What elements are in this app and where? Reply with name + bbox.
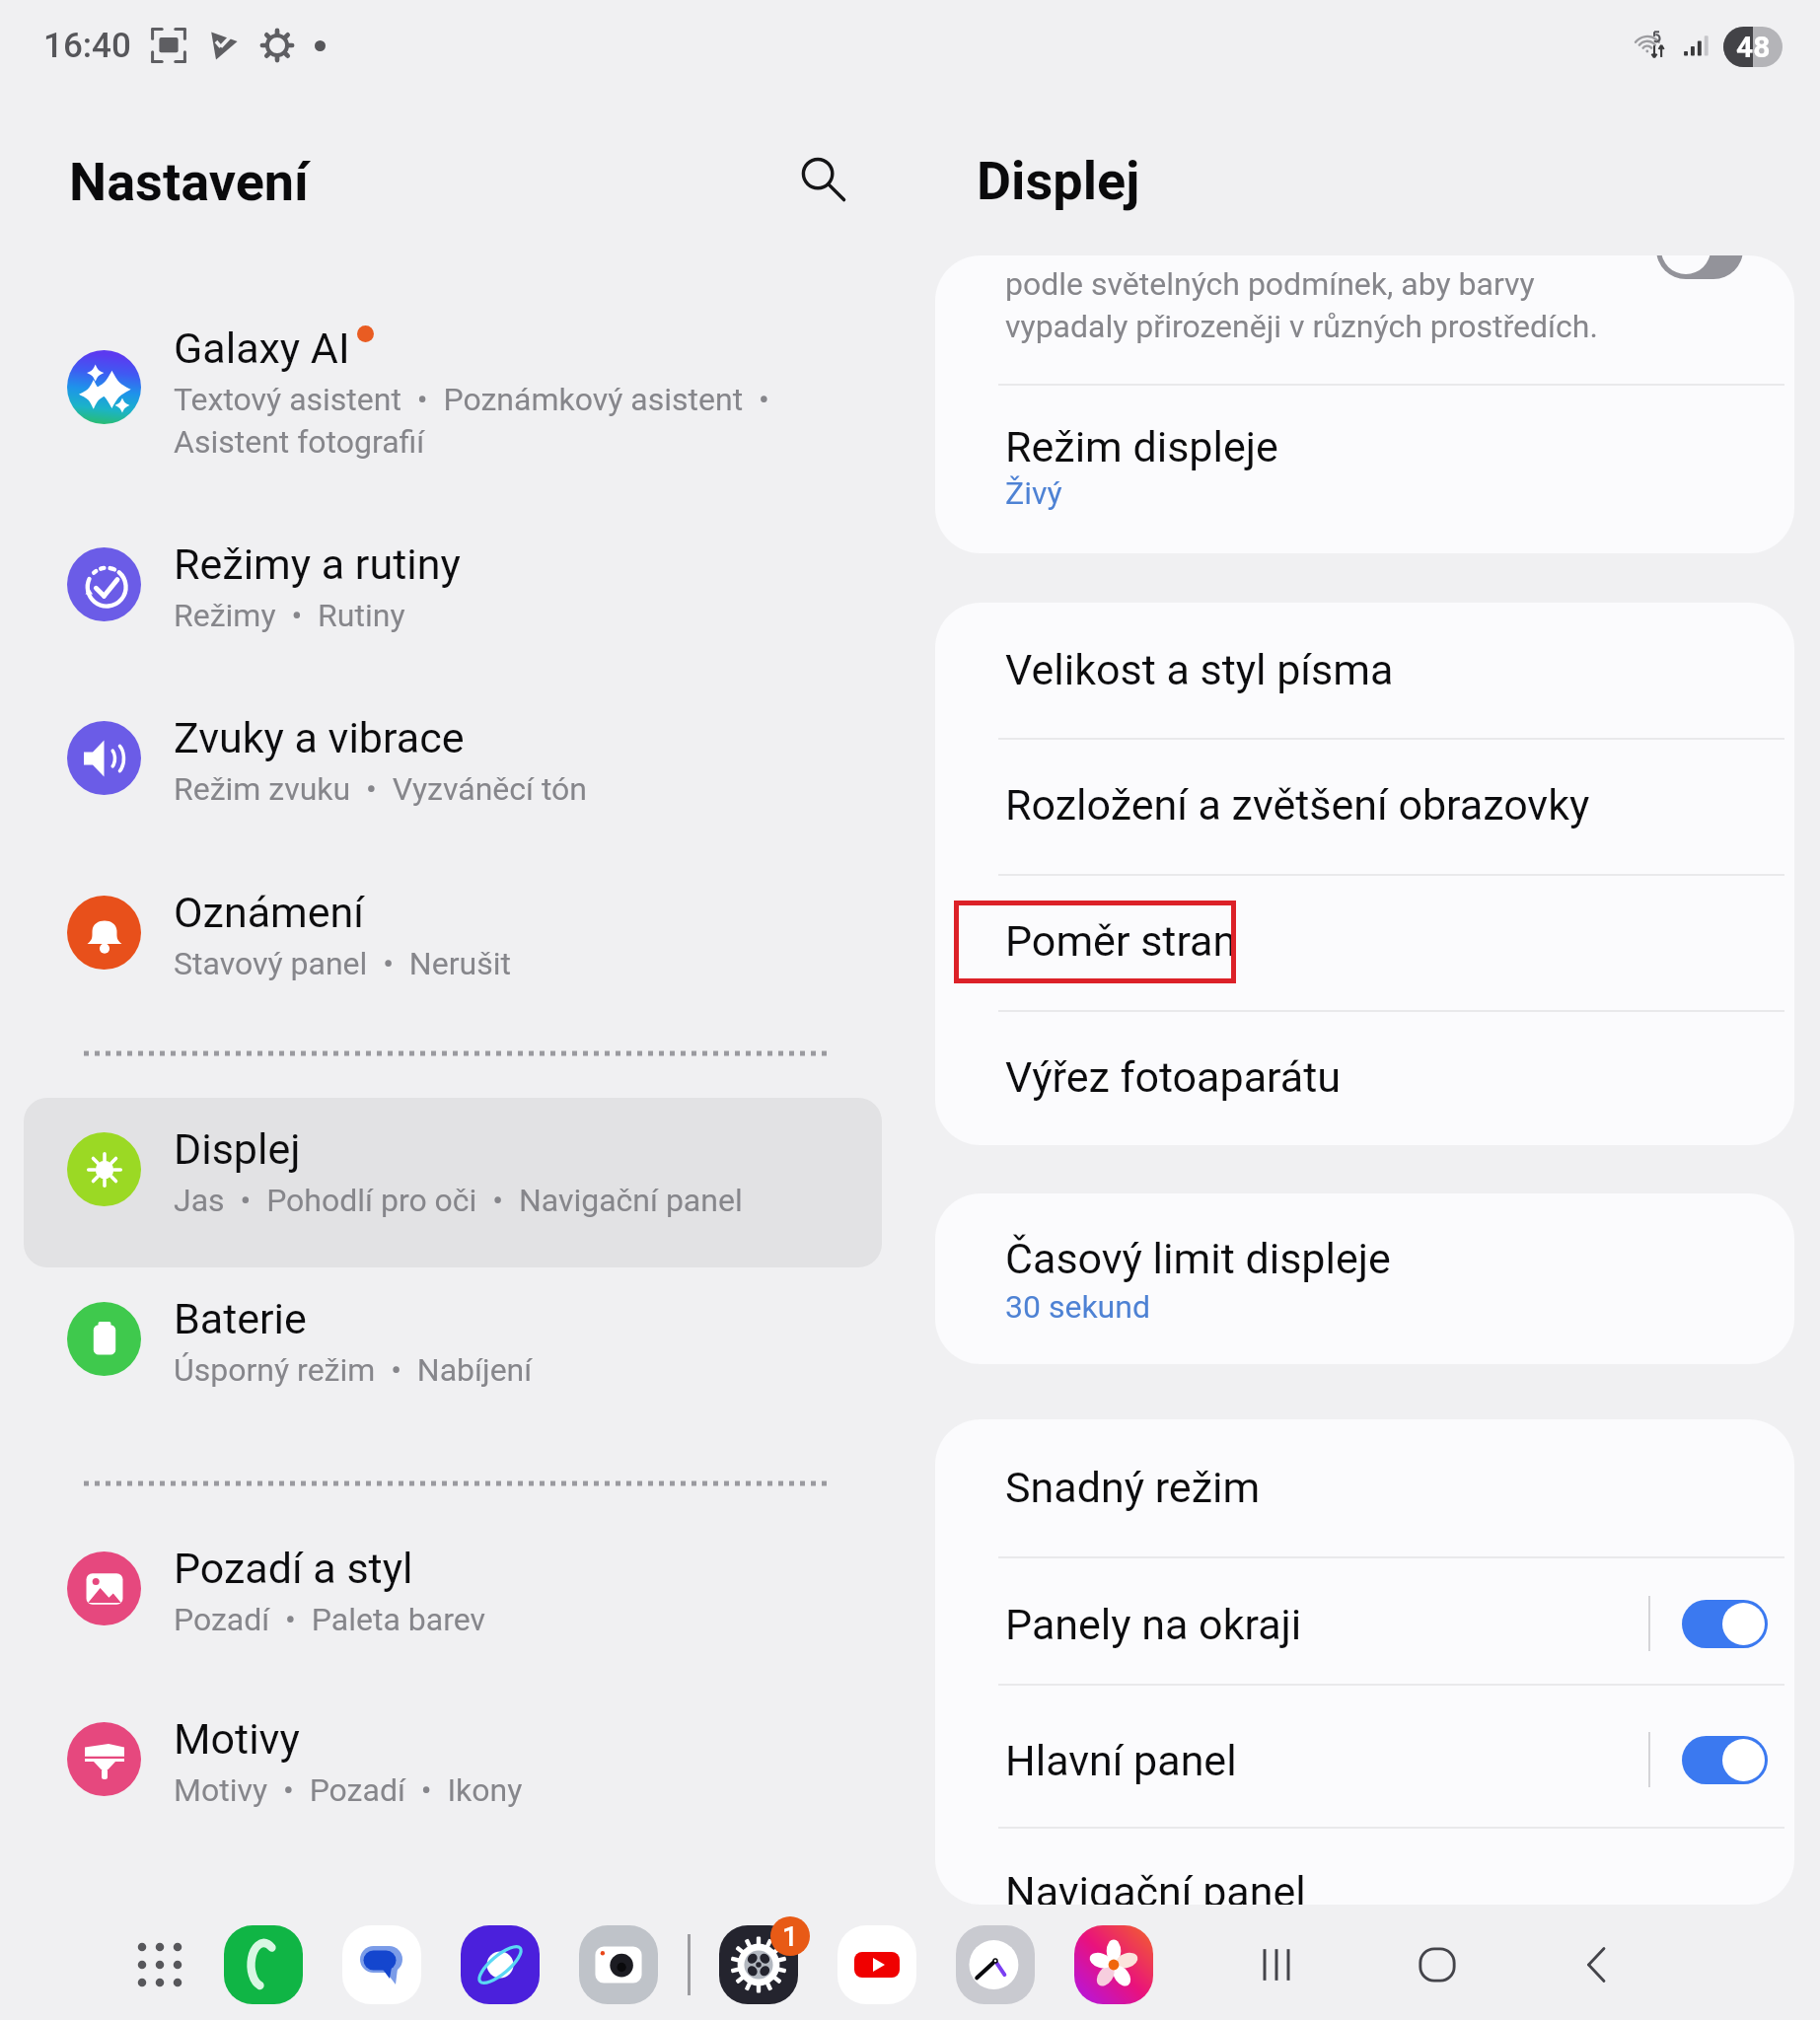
staticText: Stavový panel • Nerušit [174,945,511,982]
staticText: Hlavní panel [1005,1736,1237,1785]
button[interactable]: Messages [341,1924,422,2005]
staticText: 1 [782,1920,798,1953]
staticText: Režim zvuku • Vyzváněcí tón [174,770,587,808]
staticText: 30 sekund [1005,1288,1150,1326]
button[interactable]: Displej [26,1099,882,1247]
staticText: Zvuky a vibrace [174,713,465,762]
staticText: Navigační panel [1005,1867,1306,1905]
button[interactable]: Camera [578,1924,659,2005]
staticText: Motivy [174,1714,300,1764]
staticText: Rozložení a zvětšení obrazovky [1005,780,1590,830]
staticText: Časový limit displeje [1005,1234,1391,1283]
staticText: Režim displeje [1005,422,1278,471]
staticText: 48 [1736,30,1771,64]
button[interactable]: Apps [119,1924,200,2005]
staticText: podle světelných podmínek, aby barvy vyp… [1005,265,1598,345]
button[interactable]: Režimy a rutiny [26,514,882,662]
staticText: Displej [977,150,1140,212]
staticText: 16:40 [43,26,131,66]
staticText: Režimy • Rutiny [174,597,405,634]
staticText: Textový asistent • Poznámkový asistent •… [174,381,769,461]
button[interactable]: Recents [1236,1924,1317,2005]
staticText: Baterie [174,1294,307,1343]
button[interactable]: Oznámení [26,862,882,1010]
button[interactable]: Galaxy AI [26,298,882,491]
button[interactable]: Internet [460,1924,541,2005]
button[interactable]: Toggle [1626,1726,1711,1793]
staticText: Poměr stran [1005,916,1237,966]
button[interactable]: Phone [223,1924,304,2005]
staticText: Snadný režim [1005,1463,1261,1512]
button[interactable]: Clock [955,1924,1036,2005]
button[interactable]: Pozadí a styl [26,1518,882,1666]
button[interactable]: Baterie [26,1268,882,1416]
staticText: Výřez fotoaparátu [1005,1052,1341,1102]
staticText: Velikost a styl písma [1005,645,1394,694]
staticText: Úsporný režim • Nabíjení [174,1351,533,1389]
staticText: Živý [1005,474,1062,512]
staticText: Pozadí • Paleta barev [174,1601,485,1638]
button[interactable]: Back [1558,1924,1638,2005]
staticText: Panely na okraji [1005,1600,1302,1649]
staticText: Oznámení [174,888,364,937]
staticText: Displej [174,1124,301,1174]
button[interactable]: Motivy [26,1689,882,1837]
button[interactable]: Zvuky a vibrace [26,687,882,835]
button[interactable]: Search [777,133,868,224]
button[interactable]: Toggle [1626,1590,1711,1657]
button[interactable]: Settings [718,1924,799,2005]
staticText: Nastavení [69,151,309,213]
button[interactable]: Gallery [1073,1924,1154,2005]
button[interactable]: Home [1397,1924,1478,2005]
staticText: Jas • Pohodlí pro oči • Navigační panel [174,1182,743,1219]
button[interactable]: YouTube [837,1924,917,2005]
staticText: Motivy • Pozadí • Ikony [174,1771,523,1809]
staticText: Galaxy AI [174,324,350,373]
staticText: Pozadí a styl [174,1544,413,1593]
staticText: Režimy a rutiny [174,540,461,589]
